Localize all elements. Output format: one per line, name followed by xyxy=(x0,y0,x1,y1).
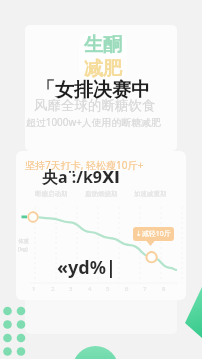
staticText: «yd%| xyxy=(57,255,116,280)
staticText: 减肥 xyxy=(84,57,122,81)
staticText: 坚持7天打卡, 轻松瘦10斤+ xyxy=(25,158,144,172)
staticText: 4 xyxy=(88,285,92,293)
staticText: 5 xyxy=(106,285,110,293)
staticText: 2 xyxy=(51,285,55,293)
staticText: 7 xyxy=(143,285,147,293)
staticText: 3 xyxy=(69,285,73,293)
staticText: 超过1000w+人使用的断糖减肥 xyxy=(26,115,161,129)
staticText: 「女排决赛中 xyxy=(36,78,150,102)
button[interactable]: 坚持7天打卡, 轻松瘦10斤+ xyxy=(16,151,186,300)
staticText: 风靡全球的断糖饮食 xyxy=(34,97,156,114)
button[interactable]: 生酮 xyxy=(25,25,177,151)
staticText: 8 xyxy=(162,285,166,293)
staticText: 加速减重期 xyxy=(134,190,167,198)
staticText: (kg) xyxy=(18,245,28,252)
staticText: 生酮 xyxy=(84,33,122,57)
staticText: 6 xyxy=(125,285,129,293)
staticText: 1 xyxy=(32,285,36,293)
staticText: 央a ̈:/k9Ⅺ xyxy=(42,166,120,188)
staticText: 体重 xyxy=(18,238,29,245)
staticText: 脂肪燃烧期 xyxy=(85,190,118,198)
staticText: ↓减轻10斤 xyxy=(136,229,171,239)
staticText: 断糖启动期 xyxy=(35,190,68,198)
